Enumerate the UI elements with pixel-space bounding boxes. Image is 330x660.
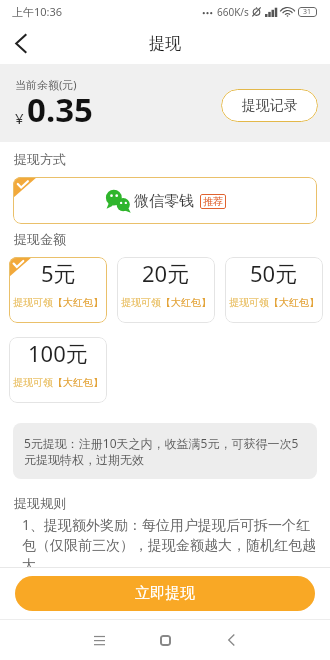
staticText: 立即提现: [135, 584, 195, 603]
staticText: 20元: [142, 258, 190, 288]
staticText: 当前余额(元): [15, 77, 77, 92]
staticText: 提现金额: [14, 231, 66, 247]
button[interactable]: 5元: [9, 257, 107, 323]
staticText: 0.35: [27, 87, 93, 132]
button[interactable]: 微信零钱: [13, 177, 317, 224]
staticText: 提现可领【大红包】: [229, 296, 319, 309]
staticText: 31: [303, 7, 312, 17]
button[interactable]: Recents: [66, 620, 132, 660]
staticText: 提现可领【大红包】: [13, 296, 103, 309]
staticText: 提现方式: [14, 151, 66, 167]
staticText: 提现可领【大红包】: [121, 296, 211, 309]
staticText: 提现可领【大红包】: [13, 376, 103, 389]
staticText: 660K/s: [217, 5, 249, 19]
staticText: 上午10:36: [12, 4, 63, 19]
button[interactable]: 提现记录: [221, 89, 318, 122]
button[interactable]: 100元: [9, 337, 107, 403]
button[interactable]: 立即提现: [15, 576, 315, 611]
button[interactable]: Home: [132, 620, 198, 660]
staticText: 提现规则: [14, 495, 66, 511]
staticText: 提现: [149, 34, 181, 54]
staticText: 微信零钱: [134, 192, 194, 211]
staticText: ¥: [15, 108, 24, 128]
staticText: 50元: [250, 258, 298, 288]
staticText: 5元提现：注册10天之内，收益满5元，可获得一次5元提现特权，过期无效: [24, 435, 307, 468]
staticText: 提现记录: [242, 97, 298, 115]
button[interactable]: Back: [198, 620, 264, 660]
staticText: 100元: [28, 338, 88, 368]
button[interactable]: 20元: [117, 257, 215, 323]
button[interactable]: 50元: [225, 257, 323, 323]
staticText: 推荐: [203, 195, 223, 208]
staticText: 1、提现额外奖励：每位用户提现后可拆一个红 包（仅限前三次），提现金额越大，随机…: [22, 515, 316, 574]
button[interactable]: Back: [0, 23, 42, 64]
staticText: 5元: [41, 258, 76, 288]
